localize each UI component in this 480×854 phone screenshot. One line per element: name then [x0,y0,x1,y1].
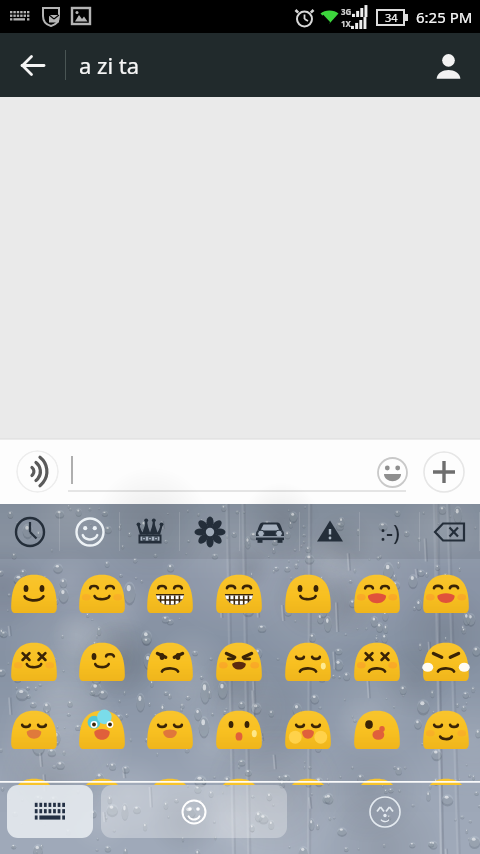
button[interactable]: joy [342,559,411,627]
staticText: :-) [380,517,400,547]
button[interactable]: Emoji style [363,790,407,834]
button[interactable]: grin [136,763,204,785]
button[interactable]: blush [68,763,136,785]
button[interactable]: del [420,504,480,559]
button[interactable]: shock [204,695,273,763]
button[interactable]: blush [68,559,136,627]
button[interactable]: car [240,504,300,559]
button[interactable]: grin [136,559,204,627]
button[interactable]: angry [136,627,204,695]
button[interactable]: sad [273,627,342,695]
button[interactable]: slight [273,559,342,627]
staticText: 34 [385,10,398,25]
button[interactable]: sleep [411,695,480,763]
button[interactable]: joy [342,763,411,785]
button[interactable]: joy2 [411,763,480,785]
button[interactable]: mad [342,627,411,695]
button[interactable]: Keyboard [7,785,93,838]
button[interactable]: clock [0,504,60,559]
button[interactable]: Voice input [16,450,59,493]
button[interactable]: Space [101,785,287,838]
button[interactable]: cry [411,627,480,695]
button[interactable]: smile [0,763,68,785]
button[interactable]: warn [300,504,360,559]
button[interactable]: smiley [60,504,120,559]
button[interactable]: crown [120,504,180,559]
button[interactable]: grinSquint [204,559,273,627]
button[interactable]: flower [180,504,240,559]
button[interactable]: scream [68,695,136,763]
staticText: a zi ta [79,50,140,80]
button[interactable]: grinSquint [204,763,273,785]
staticText: 1X [341,18,351,29]
button[interactable]: slight [273,763,342,785]
button[interactable]: sob [136,695,204,763]
button[interactable]: weary [0,695,68,763]
button[interactable]: Add attachment [422,450,466,494]
button[interactable]: fear [273,695,342,763]
button[interactable]: rage [204,627,273,695]
button[interactable]: joy2 [411,559,480,627]
button[interactable]: wink [68,627,136,695]
button[interactable]: Back [0,33,64,97]
button[interactable]: text [360,504,420,559]
button[interactable]: kiss [342,695,411,763]
button[interactable]: squint [0,627,68,695]
staticText: 6:25 PM [416,7,473,27]
staticText: 3G [341,6,352,17]
button[interactable]: Emoji [374,454,410,490]
button[interactable]: Contact [416,33,480,97]
button[interactable]: smile [0,559,68,627]
